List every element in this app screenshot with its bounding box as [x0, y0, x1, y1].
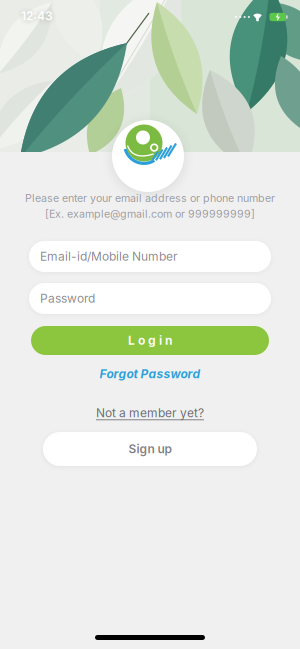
staticText: Not a member yet?: [96, 406, 204, 420]
button[interactable]: Password: [29, 283, 271, 314]
staticText: [Ex. example@gmail.com or 999999999]: [45, 207, 255, 220]
staticText: Forgot Password: [99, 367, 200, 381]
staticText: Please enter your email address or phone…: [25, 192, 275, 204]
button[interactable]: Forgot Password: [99, 367, 200, 381]
staticText: Password: [40, 291, 95, 306]
staticText: Email-id/Mobile Number: [40, 249, 178, 264]
button[interactable]: Not a member yet?: [96, 406, 204, 420]
staticText: L o g i n: [128, 333, 172, 348]
button[interactable]: L o g i n: [31, 326, 269, 355]
button[interactable]: Email-id/Mobile Number: [29, 241, 271, 272]
button[interactable]: Sign up: [43, 432, 257, 466]
staticText: 12:43: [21, 9, 53, 23]
staticText: Sign up: [128, 442, 171, 456]
